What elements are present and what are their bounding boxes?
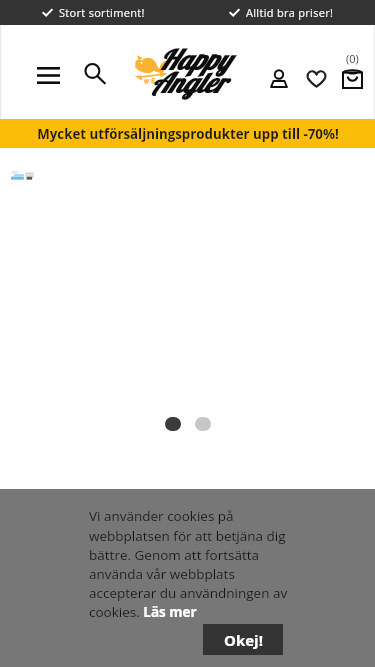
button[interactable]: Mycket utförsäljningsprodukter upp till … <box>0 119 375 148</box>
button[interactable]: Menu <box>37 59 67 91</box>
staticText: Okej! <box>224 630 263 650</box>
button[interactable]: Wishlist <box>301 63 331 93</box>
staticText: Stort sortiment! <box>59 5 145 20</box>
button[interactable]: Slide 2 <box>195 417 211 431</box>
staticText: Alltid bra priser! <box>246 5 334 20</box>
staticText: Vi använder cookies på webbplatsen för a… <box>89 507 292 621</box>
staticText: Happy <box>158 42 230 76</box>
button[interactable]: Shopping cart <box>335 51 369 95</box>
button[interactable]: Search <box>80 57 108 89</box>
staticText: Angler <box>150 65 225 99</box>
button[interactable]: Okej! <box>203 624 283 655</box>
staticText: Mycket utförsäljningsprodukter upp till … <box>37 125 339 143</box>
button[interactable]: Slide 1 <box>165 417 181 431</box>
button[interactable]: Happy Angler <box>130 51 240 101</box>
button[interactable]: Account <box>265 63 293 93</box>
staticText: (0) <box>346 51 359 66</box>
